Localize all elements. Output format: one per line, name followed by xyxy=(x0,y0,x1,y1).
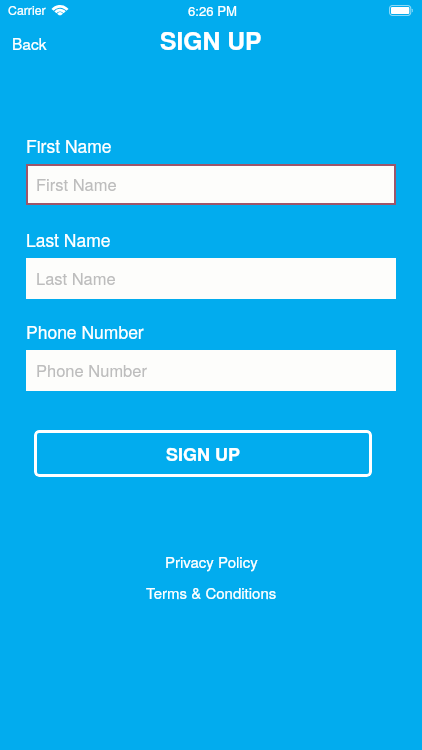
button[interactable]: SIGN UP xyxy=(34,430,372,477)
staticText: SIGN UP xyxy=(166,441,241,467)
button[interactable]: Privacy Policy xyxy=(157,549,266,574)
button[interactable]: Back xyxy=(0,26,59,60)
staticText: Terms & Conditions xyxy=(146,582,277,603)
other: Wi-Fi signal xyxy=(52,5,68,16)
staticText: Last Name xyxy=(36,266,116,290)
staticText: Phone Number xyxy=(36,358,147,382)
staticText: Phone Number xyxy=(26,319,144,344)
staticText: 6:26 PM xyxy=(188,1,238,20)
button[interactable]: Terms & Conditions xyxy=(138,580,285,605)
staticText: SIGN UP xyxy=(160,22,262,57)
staticText: Carrier xyxy=(8,1,46,19)
staticText: First Name xyxy=(36,172,117,196)
button[interactable]: Last Name xyxy=(26,258,396,299)
button[interactable]: Phone Number xyxy=(26,350,396,391)
staticText: Last Name xyxy=(26,227,111,252)
other: Battery full xyxy=(389,5,413,16)
staticText: Privacy Policy xyxy=(165,551,258,572)
staticText: Back xyxy=(12,32,47,54)
button[interactable]: First Name xyxy=(26,164,396,205)
staticText: First Name xyxy=(26,133,112,158)
